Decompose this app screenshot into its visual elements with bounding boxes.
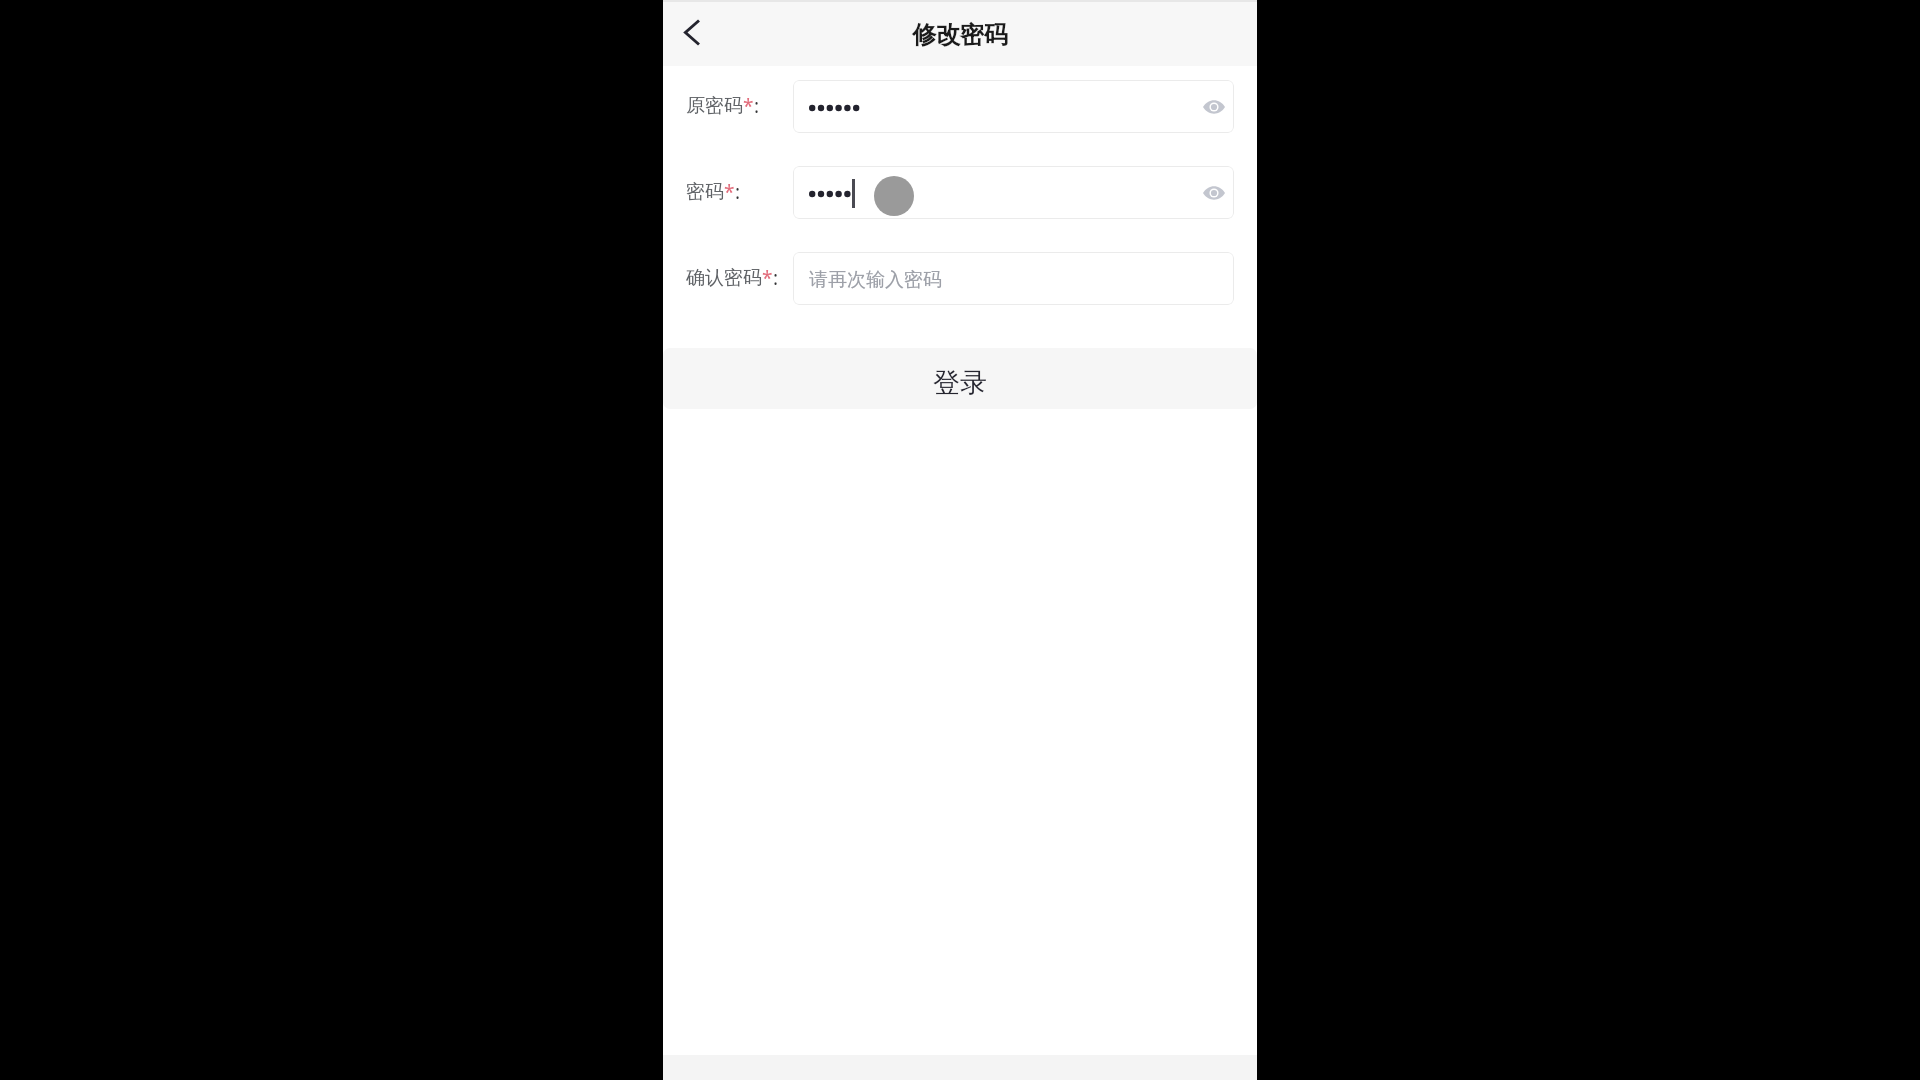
button[interactable]: Back bbox=[669, 11, 715, 57]
staticText: 确认密码 bbox=[686, 266, 762, 290]
staticText: * bbox=[724, 179, 735, 205]
button[interactable]: Show password bbox=[1198, 91, 1230, 123]
button[interactable]: Show password bbox=[793, 80, 1234, 133]
button[interactable]: Show password bbox=[1198, 177, 1230, 209]
staticText: * bbox=[743, 93, 754, 119]
staticText: 原密码 bbox=[686, 94, 743, 118]
staticText: : bbox=[773, 265, 779, 291]
button[interactable]: 请再次输入密码 bbox=[793, 252, 1234, 305]
button[interactable]: Show password bbox=[793, 166, 1234, 219]
staticText: 密码 bbox=[686, 180, 724, 204]
staticText: : bbox=[735, 179, 741, 205]
staticText: : bbox=[754, 93, 760, 119]
staticText: 请再次输入密码 bbox=[809, 268, 942, 292]
button[interactable]: 登录 bbox=[663, 348, 1257, 409]
staticText: 修改密码 bbox=[912, 20, 1008, 50]
staticText: 登录 bbox=[933, 366, 987, 400]
staticText: * bbox=[762, 265, 773, 291]
